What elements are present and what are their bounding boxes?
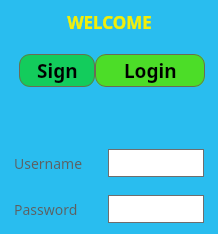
staticText: Sign: [37, 58, 78, 84]
staticText: WELCOME: [67, 11, 152, 34]
staticText: Login: [124, 58, 177, 84]
button[interactable]: [108, 149, 204, 177]
button[interactable]: Login: [95, 54, 205, 87]
staticText: Password: [14, 200, 78, 219]
staticText: Username: [14, 154, 83, 173]
button[interactable]: [108, 195, 204, 223]
button[interactable]: Sign: [19, 54, 95, 87]
